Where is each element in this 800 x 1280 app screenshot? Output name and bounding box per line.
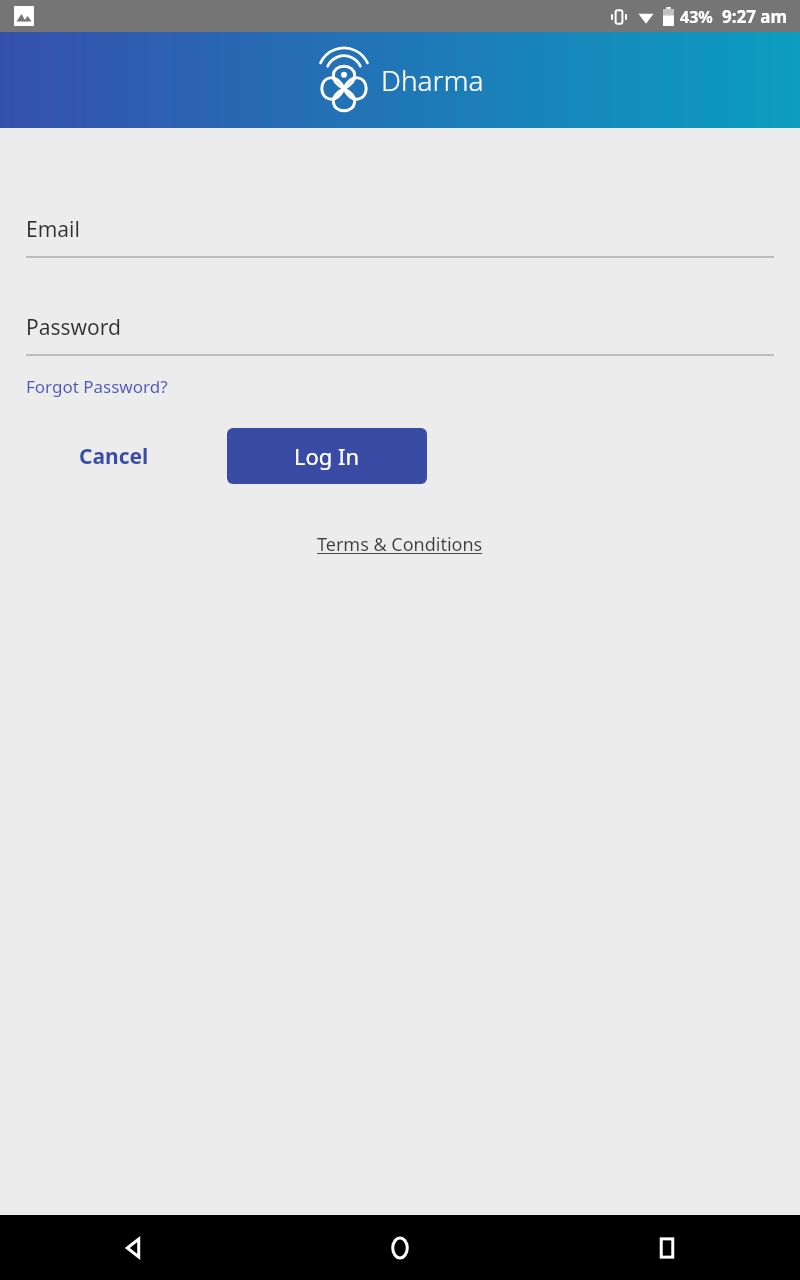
button[interactable]: Terms & Conditions <box>311 528 489 561</box>
button[interactable]: Email <box>0 215 800 258</box>
button[interactable]: Back <box>0 1215 266 1280</box>
staticText: Dharma <box>381 61 484 99</box>
button[interactable]: Home <box>266 1215 533 1280</box>
staticText: Forgot Password? <box>26 375 168 398</box>
staticText: Email <box>26 215 80 244</box>
button[interactable]: Log In <box>227 428 427 484</box>
button[interactable]: Recent apps <box>533 1215 800 1280</box>
staticText: Terms & Conditions <box>317 532 483 557</box>
button[interactable]: Cancel <box>0 428 227 484</box>
staticText: Log In <box>294 441 360 471</box>
staticText: 43% <box>680 6 713 28</box>
staticText: Cancel <box>79 442 149 471</box>
button[interactable]: Password <box>0 313 800 356</box>
staticText: Password <box>26 313 121 342</box>
staticText: 9:27 am <box>722 5 788 28</box>
button[interactable]: Forgot Password? <box>26 371 168 402</box>
